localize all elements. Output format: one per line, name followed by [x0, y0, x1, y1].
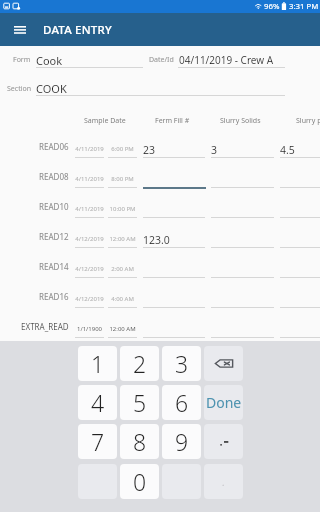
staticText: READ16: [39, 291, 69, 302]
staticText: Cook: [36, 53, 63, 68]
staticText: 123.0: [143, 233, 170, 247]
button[interactable]: READ14: [0, 254, 69, 282]
staticText: 23: [143, 143, 156, 157]
staticText: 4/12/2019: [75, 295, 104, 303]
staticText: Date/Id: [149, 55, 174, 65]
button[interactable]: READ12: [0, 224, 69, 252]
staticText: READ12: [39, 231, 69, 242]
staticText: 4/12/2019: [75, 235, 104, 243]
staticText: 4: [91, 387, 105, 418]
staticText: 3: [175, 348, 189, 379]
staticText: COOK: [36, 81, 67, 96]
button[interactable]: 6: [162, 385, 201, 420]
staticText: 4:00 AM: [108, 295, 137, 303]
staticText: READ14: [39, 261, 69, 272]
staticText: 6:00 PM: [108, 145, 137, 153]
staticText: 0: [133, 466, 147, 497]
staticText: 8: [133, 426, 147, 457]
button[interactable]: 4: [78, 385, 117, 420]
button[interactable]: EXTRA_READ: [0, 314, 69, 342]
staticText: 2:00 AM: [108, 265, 137, 273]
staticText: 6: [175, 387, 189, 418]
button[interactable]: 9: [162, 424, 201, 459]
staticText: 8:00 PM: [108, 175, 137, 183]
staticText: READ10: [39, 201, 69, 212]
staticText: 12:00 AM: [108, 235, 137, 243]
staticText: 3:31 PM: [289, 1, 319, 12]
staticText: Section: [7, 84, 32, 94]
staticText: 3: [211, 143, 218, 157]
staticText: 9: [175, 426, 189, 457]
staticText: Slurry pH: [296, 116, 320, 126]
staticText: DATA ENTRY: [43, 22, 112, 38]
staticText: 4/11/2019: [75, 175, 104, 183]
button[interactable]: READ06: [0, 134, 69, 162]
staticText: 96%: [264, 1, 280, 12]
button[interactable]: Done: [204, 385, 243, 420]
staticText: 5: [133, 387, 147, 418]
button[interactable]: Open navigation menu: [7, 17, 32, 42]
staticText: 4/12/2019: [75, 265, 104, 273]
button[interactable]: READ10: [0, 194, 69, 222]
staticText: Done: [206, 393, 242, 412]
button[interactable]: 7: [78, 424, 117, 459]
button[interactable]: READ08: [0, 164, 69, 192]
staticText: 10:00 PM: [108, 205, 137, 213]
button[interactable]: READ16: [0, 284, 69, 312]
staticText: READ08: [39, 171, 69, 182]
button[interactable]: 2: [120, 346, 159, 381]
button[interactable]: 3: [162, 346, 201, 381]
button[interactable]: 5: [120, 385, 159, 420]
staticText: READ06: [39, 141, 69, 152]
staticText: Slurry Solids: [220, 116, 261, 126]
staticText: EXTRA_READ: [21, 321, 69, 332]
button[interactable]: Backspace: [204, 346, 243, 381]
button[interactable]: 0: [120, 464, 159, 499]
staticText: 12:00 AM: [108, 325, 137, 333]
button[interactable]: [204, 424, 243, 459]
staticText: 4/11/2019: [75, 205, 104, 213]
staticText: 7: [91, 426, 105, 457]
staticText: 1/1/1900: [75, 325, 104, 333]
staticText: .: [222, 476, 225, 488]
staticText: 1: [91, 348, 105, 379]
staticText: Form: [13, 55, 31, 65]
staticText: 2: [133, 348, 147, 379]
button[interactable]: 8: [120, 424, 159, 459]
staticText: Sample Date: [84, 116, 126, 126]
staticText: Ferm Fill #: [155, 116, 190, 126]
staticText: 4/11/2019: [75, 145, 104, 153]
staticText: 4.5: [280, 143, 295, 157]
staticText: 04/11/2019 - Crew A: [179, 53, 274, 67]
button[interactable]: 1: [78, 346, 117, 381]
